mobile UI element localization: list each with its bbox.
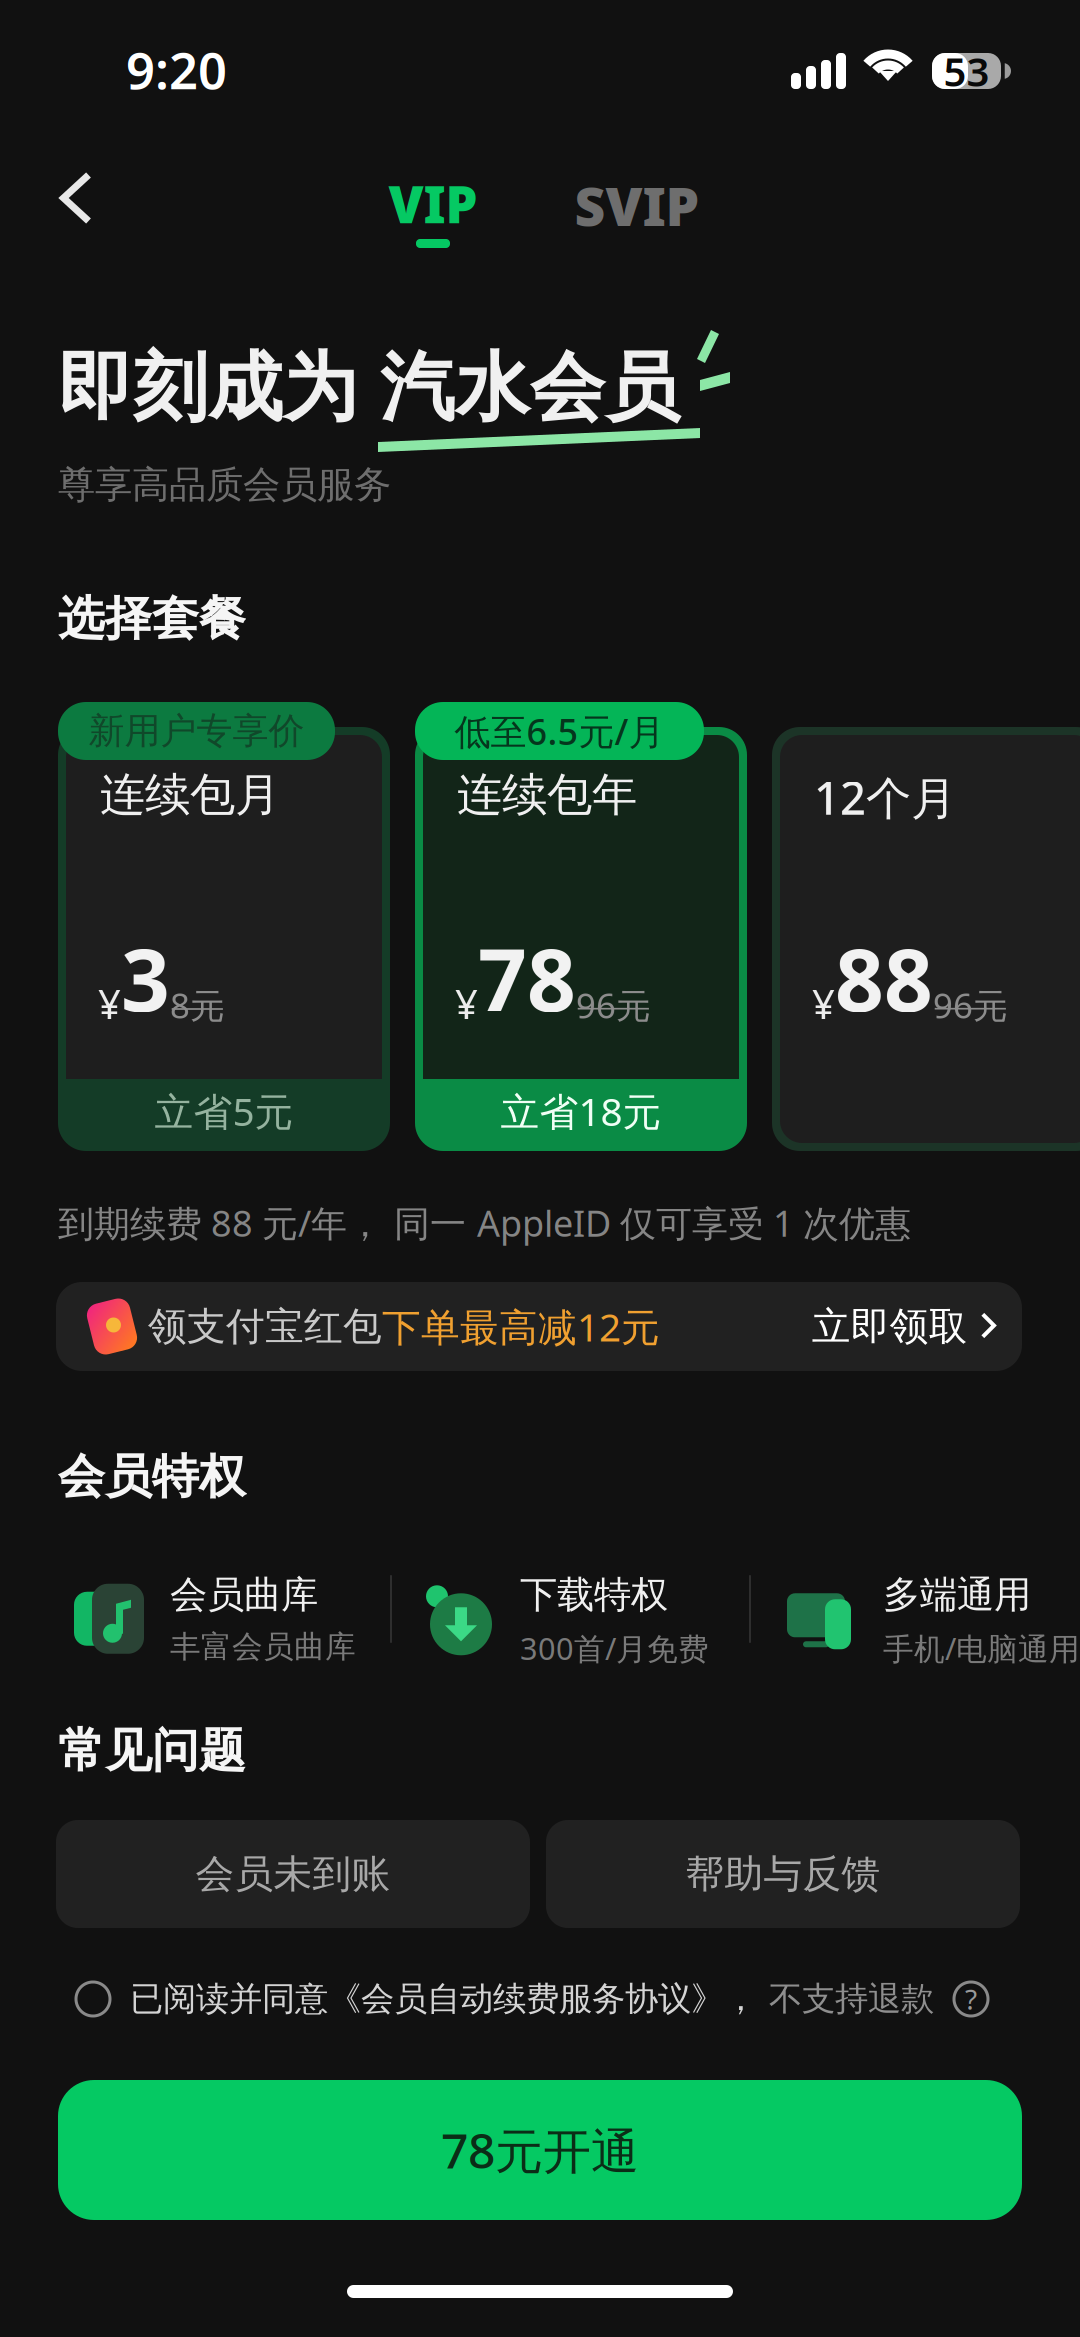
staticText: 即刻成为 汽水会员	[58, 342, 680, 434]
button[interactable]: 12个月	[772, 702, 1080, 1154]
staticText: 连续包月	[100, 767, 280, 823]
button[interactable]: 78元开通	[58, 2080, 1022, 2220]
staticText: ¥	[98, 977, 121, 1030]
staticText: 已阅读并同意《会员自动续费服务协议》，	[130, 1978, 757, 2019]
staticText: 53	[943, 44, 989, 97]
staticText: 3	[121, 922, 170, 1035]
staticText: 常见问题	[58, 1722, 246, 1779]
button[interactable]: 连续包年	[415, 702, 747, 1154]
staticText: 88	[835, 922, 933, 1035]
staticText: 立省18元	[500, 1085, 661, 1137]
staticText: 帮助与反馈	[685, 1850, 880, 1898]
staticText: ?	[965, 1980, 977, 2018]
button[interactable]: VIP	[350, 170, 516, 262]
staticText: 96元	[576, 982, 651, 1028]
staticText: 不支持退款	[769, 1978, 934, 2019]
staticText: 8元	[170, 982, 225, 1028]
staticText: 12个月	[814, 767, 956, 827]
staticText: 78元开通	[441, 2118, 639, 2182]
staticText: VIP	[388, 170, 477, 237]
button[interactable]: 会员未到账	[56, 1820, 530, 1928]
staticText: 会员曲库	[170, 1572, 318, 1618]
staticText: 到期续费 88 元/年， 同一 AppleID 仅可享受 1 次优惠	[58, 1199, 911, 1247]
staticText: 会员特权	[58, 1448, 246, 1505]
staticText: SVIP	[574, 170, 699, 241]
staticText: 手机/电脑通用	[883, 1628, 1080, 1669]
staticText: 立即领取	[812, 1303, 968, 1350]
button[interactable]: 连续包月	[58, 702, 390, 1154]
staticText: 下单最高减12元	[382, 1301, 660, 1352]
button[interactable]: SVIP	[542, 170, 732, 262]
staticText: 9:20	[126, 36, 227, 103]
button[interactable]: 领支付宝红包	[56, 1282, 1022, 1371]
staticText: 300首/月免费	[520, 1628, 709, 1669]
staticText: 立省5元	[154, 1085, 293, 1137]
staticText: 新用户专享价	[88, 709, 304, 753]
staticText: ¥	[455, 977, 478, 1030]
button[interactable]: 帮助与反馈	[546, 1820, 1020, 1928]
staticText: 下载特权	[520, 1572, 668, 1618]
staticText: 连续包年	[457, 767, 637, 823]
button[interactable]: 帮助	[934, 1978, 988, 2020]
staticText: 尊享高品质会员服务	[58, 462, 391, 508]
staticText: 96元	[933, 982, 1008, 1028]
staticText: 选择套餐	[58, 590, 246, 647]
staticText: 会员未到账	[195, 1850, 390, 1898]
button[interactable]: 返回	[28, 152, 124, 244]
staticText: 丰富会员曲库	[170, 1628, 356, 1666]
button[interactable]: 同意协议	[76, 1978, 130, 2020]
staticText: 多端通用	[883, 1572, 1031, 1618]
staticText: 低至6.5元/月	[454, 707, 664, 755]
staticText: ¥	[812, 977, 835, 1030]
staticText: 领支付宝红包	[148, 1303, 382, 1350]
staticText: 78	[478, 922, 576, 1035]
